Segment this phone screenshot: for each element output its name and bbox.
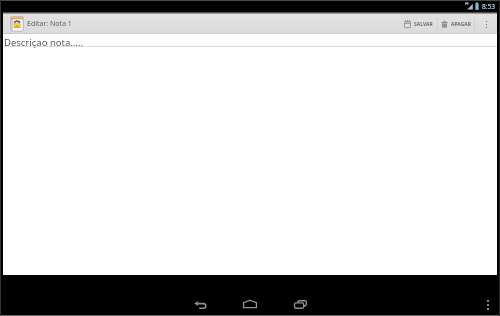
button[interactable]: Back bbox=[175, 292, 225, 316]
staticText: Descriçao nota..... bbox=[4, 36, 83, 49]
staticText: SALVAR bbox=[414, 21, 433, 28]
staticText: 8:53 bbox=[482, 2, 496, 11]
button[interactable]: Menu bbox=[482, 299, 494, 311]
button[interactable]: More options bbox=[475, 14, 497, 34]
button[interactable]: Recent apps bbox=[275, 292, 325, 316]
staticText: APAGAR bbox=[451, 21, 472, 28]
staticText: Editar: Nota 1 bbox=[27, 19, 72, 29]
button[interactable]: APAGAR bbox=[438, 14, 474, 34]
button[interactable]: Home bbox=[225, 292, 275, 316]
button[interactable]: SALVAR bbox=[399, 14, 437, 34]
